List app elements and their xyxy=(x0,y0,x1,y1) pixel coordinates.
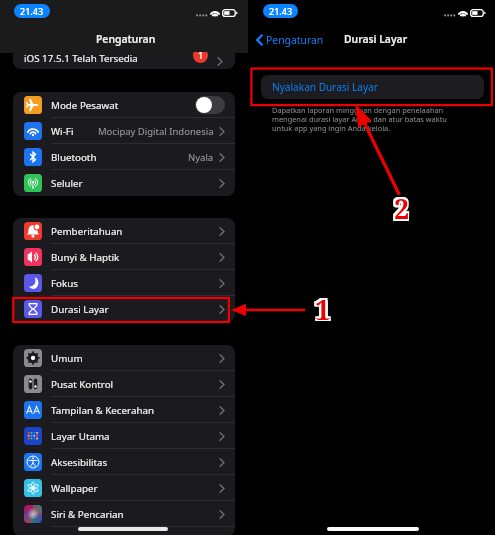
staticText: Seluler xyxy=(51,177,83,190)
other: More xyxy=(219,484,225,493)
button[interactable]: Mode Pesawat xyxy=(13,92,235,118)
staticText: 1 xyxy=(317,289,333,326)
button[interactable]: Bluetooth xyxy=(13,144,235,170)
button[interactable]: Aksesibilitas xyxy=(13,449,235,475)
staticText: 2 xyxy=(392,192,408,229)
other: More xyxy=(219,354,225,363)
staticText: Pengaturan xyxy=(96,32,156,46)
button[interactable]: Wi-Fi xyxy=(13,118,235,144)
staticText: 1 xyxy=(315,292,331,329)
other: More xyxy=(219,127,225,136)
staticText: Fokus xyxy=(51,277,78,290)
staticText: 2 xyxy=(392,188,408,225)
other: More xyxy=(219,179,225,188)
button[interactable]: Pengaturan xyxy=(256,33,324,47)
staticText: 1 xyxy=(317,292,333,329)
button[interactable]: Nyalakan Durasi Layar xyxy=(261,75,484,99)
staticText: 1 xyxy=(313,291,329,328)
button[interactable]: Fokus xyxy=(13,270,235,296)
button[interactable]: Pusat Kontrol xyxy=(13,371,235,397)
staticText: Mocipay Digital Indonesia xyxy=(98,125,214,138)
other: More xyxy=(219,432,225,441)
staticText: Durasi Layar xyxy=(344,32,408,46)
staticText: Bunyi & Haptik xyxy=(51,251,120,264)
staticText: Umum xyxy=(51,352,83,365)
staticText: 2 xyxy=(395,190,411,227)
button[interactable]: Wallpaper xyxy=(13,475,235,501)
other: More xyxy=(219,510,225,519)
staticText: Wi-Fi xyxy=(51,125,74,138)
staticText: 1 xyxy=(313,292,329,329)
other: More xyxy=(217,57,223,66)
staticText: 2 xyxy=(392,190,408,227)
staticText: Nyala xyxy=(188,151,214,164)
staticText: Layar Utama xyxy=(51,430,110,443)
other: More xyxy=(219,458,225,467)
staticText: Bluetooth xyxy=(51,151,97,164)
staticText: Pengaturan xyxy=(266,33,324,47)
other: More xyxy=(219,406,225,415)
staticText: 2 xyxy=(395,188,411,225)
staticText: Wallpaper xyxy=(51,482,98,495)
other: More xyxy=(219,279,225,288)
button[interactable]: Siri & Pencarian xyxy=(13,501,235,527)
staticText: iOS 17.5.1 Telah Tersedia xyxy=(24,52,138,65)
staticText: 2 xyxy=(394,192,410,229)
staticText: 1 xyxy=(315,291,331,328)
other: More xyxy=(219,227,225,236)
staticText: Tampilan & Kecerahan xyxy=(51,404,154,417)
staticText: 1 xyxy=(313,289,329,326)
other: More xyxy=(219,380,225,389)
other: More xyxy=(219,153,225,162)
button[interactable]: Bunyi & Haptik xyxy=(13,244,235,270)
staticText: Dapatkan laporan mingguan dengan penelaa… xyxy=(272,105,455,134)
staticText: 21.43 xyxy=(20,5,44,17)
staticText: 2 xyxy=(394,190,410,227)
staticText: Siri & Pencarian xyxy=(51,508,124,521)
staticText: 2 xyxy=(395,192,411,229)
staticText: 1 xyxy=(198,52,204,62)
staticText: 1 xyxy=(315,289,331,326)
staticText: Aksesibilitas xyxy=(51,456,108,469)
staticText: 21.43 xyxy=(269,5,293,17)
staticText: Durasi Layar xyxy=(51,303,109,316)
staticText: Pemberitahuan xyxy=(51,225,123,238)
staticText: Pusat Kontrol xyxy=(51,378,114,391)
button[interactable]: Tampilan & Kecerahan xyxy=(13,397,235,423)
staticText: 2 xyxy=(394,188,410,225)
staticText: 1 xyxy=(317,291,333,328)
staticText: Mode Pesawat xyxy=(51,99,119,112)
staticText: Nyalakan Durasi Layar xyxy=(272,80,378,94)
button[interactable]: Umum xyxy=(13,345,235,371)
button[interactable]: Seluler xyxy=(13,170,235,196)
button[interactable]: Durasi Layar xyxy=(13,296,235,322)
other: More xyxy=(219,253,225,262)
button[interactable]: Layar Utama xyxy=(13,423,235,449)
button[interactable]: Pemberitahuan xyxy=(13,218,235,244)
button[interactable]: iOS 17.5.1 Telah Tersedia xyxy=(13,52,235,69)
other: More xyxy=(219,305,225,314)
